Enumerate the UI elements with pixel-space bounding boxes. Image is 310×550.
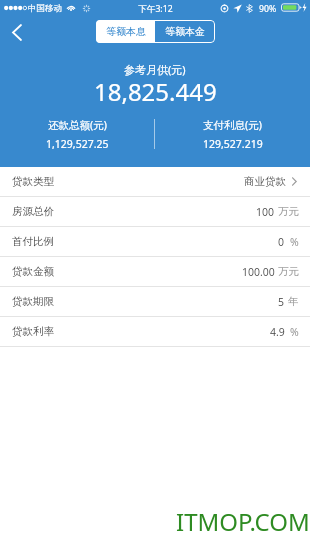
staticText: 年	[288, 295, 299, 308]
button[interactable]: 等额本金	[155, 20, 215, 43]
staticText: 1,129,527.25	[46, 137, 109, 150]
staticText: 中国移动	[28, 3, 62, 14]
staticText: 还款总额(元)	[48, 118, 107, 132]
staticText: 贷款利率	[12, 325, 54, 338]
staticText: 支付利息(元)	[203, 118, 262, 132]
staticText: 90%	[259, 3, 277, 15]
staticText: %	[290, 235, 299, 249]
staticText: 参考月供(元)	[124, 62, 186, 77]
staticText: 房源总价	[12, 205, 54, 218]
staticText: 100.00	[242, 265, 275, 279]
staticText: 等额本息	[106, 25, 146, 38]
staticText: 129,527.219	[203, 137, 263, 150]
button[interactable]: 贷款类型	[0, 167, 310, 196]
staticText: %	[290, 325, 299, 339]
staticText: 0	[278, 235, 285, 249]
button[interactable]: 房源总价	[0, 197, 310, 226]
button[interactable]: Back	[2, 17, 32, 47]
staticText: ITMOP.COM	[176, 505, 310, 538]
staticText: 等额本金	[165, 25, 205, 38]
staticText: 首付比例	[12, 235, 54, 248]
button[interactable]: 等额本息	[96, 20, 155, 43]
staticText: 下午3:12	[138, 3, 173, 15]
staticText: 贷款类型	[12, 175, 54, 188]
staticText: 万元	[278, 205, 299, 218]
staticText: 5	[278, 295, 285, 309]
button[interactable]: 贷款金额	[0, 257, 310, 286]
button[interactable]: 贷款利率	[0, 317, 310, 346]
button[interactable]: 首付比例	[0, 227, 310, 256]
staticText: 贷款期限	[12, 295, 54, 308]
button[interactable]: 贷款期限	[0, 287, 310, 316]
staticText: 万元	[278, 265, 299, 278]
staticText: 商业贷款	[244, 175, 286, 188]
staticText: 100	[256, 205, 275, 219]
staticText: 4.9	[270, 325, 285, 339]
staticText: 贷款金额	[12, 265, 54, 278]
staticText: 18,825.449	[94, 75, 217, 108]
